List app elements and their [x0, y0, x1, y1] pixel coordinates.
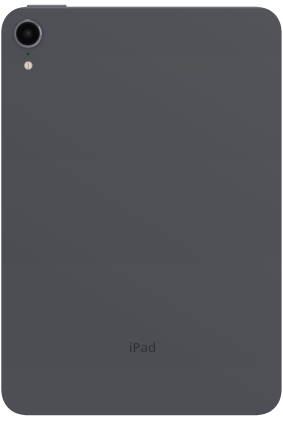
staticText: iPad [129, 338, 156, 356]
button[interactable]: iPad back view [0, 0, 283, 421]
